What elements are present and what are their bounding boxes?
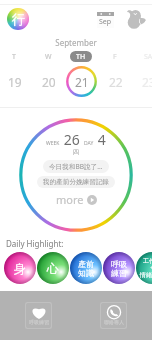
staticText: 22 — [109, 74, 123, 90]
staticText: 我的產前分娩練習記錄 — [43, 178, 109, 186]
staticText: 今日我和BB說了... — [49, 162, 103, 171]
button[interactable]: Breathing exercise — [26, 303, 51, 328]
staticText: F — [113, 52, 117, 62]
button[interactable]: 產前 知識 — [70, 252, 102, 284]
staticText: W — [45, 52, 52, 62]
staticText: 21 — [75, 74, 89, 90]
staticText: 20 — [42, 74, 56, 90]
button[interactable]: 身 — [4, 252, 36, 284]
button[interactable]: TH — [64, 51, 98, 97]
staticText: 行 — [12, 11, 25, 27]
button[interactable]: Mascot bird — [125, 9, 146, 30]
staticText: 19 — [8, 74, 22, 90]
staticText: 26 — [60, 130, 84, 149]
button[interactable]: 工作坊 + 情緒交流 — [136, 252, 152, 284]
button[interactable]: 我的產前分娩練習記錄 — [37, 176, 115, 188]
button[interactable]: T — [0, 51, 31, 97]
button[interactable]: 呼吸 練習 — [103, 252, 135, 284]
staticText: 身 — [14, 261, 26, 276]
button[interactable]: 今日我和BB說了... — [43, 160, 109, 173]
staticText: DAY — [84, 140, 94, 147]
staticText: 產前 知識 — [78, 259, 94, 278]
staticText: 工作坊 + 情緒交流 — [140, 257, 152, 279]
button[interactable]: Contact a specialist — [101, 303, 126, 328]
staticText: September — [0, 37, 152, 48]
staticText: 聯絡專人 — [104, 319, 124, 325]
button[interactable]: Profile — [7, 8, 29, 30]
button[interactable]: 心 — [37, 252, 69, 284]
button[interactable]: more — [56, 192, 97, 207]
staticText: Daily Highlight: — [6, 238, 64, 249]
staticText: 四 — [73, 148, 79, 156]
staticText: 4 — [94, 130, 106, 149]
staticText: 23 — [142, 74, 152, 90]
staticText: SA — [144, 52, 152, 62]
staticText: 心 — [47, 261, 59, 276]
staticText: 呼吸 練習 — [111, 259, 127, 278]
button[interactable]: W — [31, 51, 65, 97]
staticText: more — [56, 192, 87, 207]
staticText: TH — [76, 52, 86, 62]
staticText: Sep — [99, 17, 112, 27]
staticText: T — [12, 52, 16, 62]
button[interactable]: SA — [131, 51, 152, 97]
button[interactable]: Calendar, September — [97, 12, 114, 28]
button[interactable]: F — [98, 51, 132, 97]
staticText: 呼吸練習 — [29, 319, 49, 325]
staticText: WEEK — [46, 140, 60, 147]
